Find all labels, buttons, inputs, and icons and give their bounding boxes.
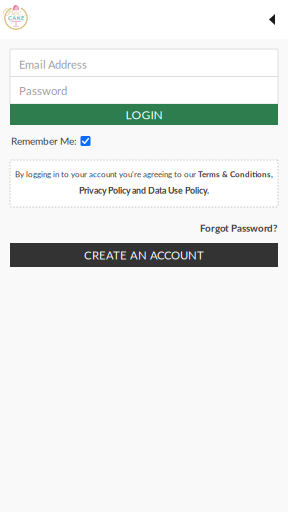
staticText: LOGIN [125,107,162,122]
staticText: CAKE [8,15,24,21]
staticText: Piece of [3,6,29,20]
button[interactable]: Back [258,5,286,33]
button[interactable]: LOGIN [10,104,278,125]
button[interactable]: Forgot Password? [200,222,277,234]
staticText: Privacy Policy and Data Use Policy. [79,185,209,196]
staticText: CREATE AN ACCOUNT [84,248,204,262]
staticText: Terms & Conditions, [198,169,273,179]
staticText: Remember Me: [11,135,77,147]
staticText: Password [19,84,67,97]
staticText: By logging in to your account you're agr… [15,169,198,179]
button[interactable]: CREATE AN ACCOUNT [10,243,278,267]
staticText: Email Address [19,58,87,71]
staticText: Forgot Password? [200,222,277,234]
